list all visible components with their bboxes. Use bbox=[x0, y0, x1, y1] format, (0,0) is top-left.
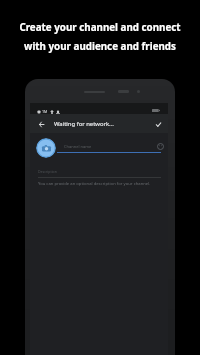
staticText: with your audience and friends bbox=[24, 40, 176, 53]
staticText: Create your channel and connect bbox=[19, 21, 181, 34]
button[interactable]: Back bbox=[35, 118, 47, 130]
staticText: Channel name bbox=[64, 144, 92, 149]
staticText: Waiting for network... bbox=[54, 120, 114, 128]
button[interactable]: Add channel photo bbox=[36, 138, 56, 158]
staticText: Description bbox=[38, 169, 57, 174]
button[interactable]: Emoji bbox=[156, 142, 165, 151]
button[interactable]: Done bbox=[152, 118, 164, 130]
staticText: You can provide an optional description … bbox=[38, 181, 151, 187]
staticText: 1M bbox=[42, 109, 48, 114]
